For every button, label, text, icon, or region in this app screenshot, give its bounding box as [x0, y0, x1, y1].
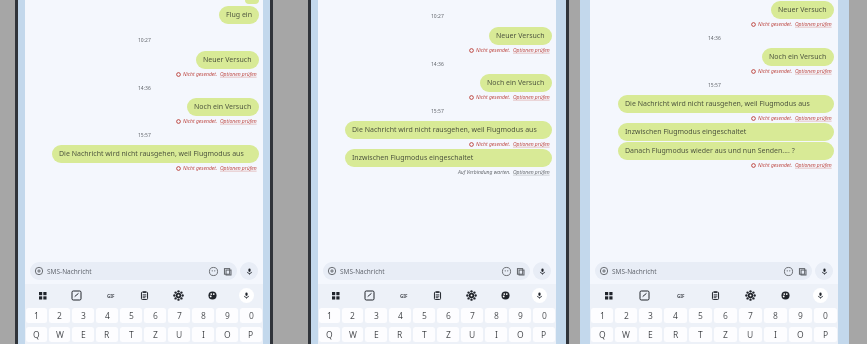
button[interactable]: Optionen prüfen: [795, 115, 832, 122]
button[interactable]: Stickers: [352, 284, 386, 306]
button[interactable]: 4: [389, 308, 411, 323]
button[interactable]: 7: [168, 308, 190, 323]
button[interactable]: Inzwischen Flugmodus eingeschaltet: [618, 123, 834, 141]
button[interactable]: R: [389, 327, 411, 342]
button[interactable]: 2: [615, 308, 637, 323]
button[interactable]: Settings: [733, 284, 768, 306]
button[interactable]: Noch ein Versuch: [762, 48, 834, 66]
button[interactable]: 3: [365, 308, 387, 323]
button[interactable]: GIF: [662, 284, 698, 306]
button[interactable]: Optionen prüfen: [795, 21, 832, 28]
button[interactable]: 6: [437, 308, 459, 323]
button[interactable]: Optionen prüfen: [513, 141, 550, 148]
button[interactable]: Optionen prüfen: [220, 71, 257, 78]
button[interactable]: U: [739, 327, 762, 342]
button[interactable]: 0: [814, 308, 837, 323]
button[interactable]: 3: [639, 308, 662, 323]
button[interactable]: Die Nachricht wird nicht rausgehen, weil…: [618, 95, 834, 113]
button[interactable]: Neuer Versuch: [196, 51, 259, 69]
button[interactable]: Keyboard switcher: [590, 284, 626, 306]
button[interactable]: GIF: [386, 284, 420, 306]
button[interactable]: Themes: [195, 284, 229, 306]
button[interactable]: Keyboard switcher: [25, 284, 59, 306]
button[interactable]: Die Nachricht wird nicht rausgehen, weil…: [345, 121, 552, 139]
button[interactable]: 5: [120, 308, 142, 323]
button[interactable]: 7: [461, 308, 483, 323]
button[interactable]: 1: [591, 308, 613, 323]
button[interactable]: Danach Flugmodus wieder aus und nun Send…: [618, 142, 834, 160]
button[interactable]: 9: [789, 308, 812, 323]
button[interactable]: I: [485, 327, 507, 342]
button[interactable]: Optionen prüfen: [513, 47, 550, 54]
button[interactable]: Z: [144, 327, 166, 342]
button[interactable]: U: [461, 327, 483, 342]
button[interactable]: 8: [192, 308, 214, 323]
button[interactable]: Neuer Versuch: [771, 1, 834, 19]
button[interactable]: Voice typing: [813, 288, 828, 303]
button[interactable]: P: [240, 327, 262, 342]
button[interactable]: Inzwischen Flugmodus eingeschaltet: [345, 149, 552, 167]
button[interactable]: Stickers: [626, 284, 662, 306]
button[interactable]: Settings: [454, 284, 488, 306]
button[interactable]: Voice input: [533, 262, 551, 280]
button[interactable]: 9: [509, 308, 531, 323]
button[interactable]: 2: [342, 308, 363, 323]
button[interactable]: 4: [96, 308, 118, 323]
button[interactable]: O: [509, 327, 531, 342]
button[interactable]: Attach: [323, 262, 530, 280]
button[interactable]: 4: [664, 308, 687, 323]
button[interactable]: T: [413, 327, 435, 342]
button[interactable]: Clipboard: [127, 284, 161, 306]
button[interactable]: O: [216, 327, 238, 342]
button[interactable]: 5: [689, 308, 712, 323]
button[interactable]: T: [120, 327, 142, 342]
button[interactable]: 8: [485, 308, 507, 323]
button[interactable]: Noch ein Versuch: [480, 74, 552, 92]
button[interactable]: R: [664, 327, 687, 342]
button[interactable]: 1: [319, 308, 340, 323]
button[interactable]: E: [639, 327, 662, 342]
button[interactable]: Q: [26, 327, 47, 342]
button[interactable]: Flug ein: [219, 6, 259, 24]
button[interactable]: Q: [591, 327, 613, 342]
button[interactable]: Keyboard switcher: [318, 284, 352, 306]
button[interactable]: Voice input: [815, 262, 833, 280]
button[interactable]: U: [168, 327, 190, 342]
button[interactable]: E: [365, 327, 387, 342]
button[interactable]: GIF: [93, 284, 127, 306]
button[interactable]: P: [533, 327, 555, 342]
button[interactable]: Voice typing: [239, 288, 254, 303]
button[interactable]: Themes: [488, 284, 522, 306]
button[interactable]: 9: [216, 308, 238, 323]
button[interactable]: Clipboard: [698, 284, 733, 306]
button[interactable]: Optionen prüfen: [513, 94, 550, 101]
button[interactable]: 8: [764, 308, 787, 323]
button[interactable]: 2: [49, 308, 70, 323]
button[interactable]: Neuer Versuch: [489, 27, 552, 45]
button[interactable]: 0: [533, 308, 555, 323]
button[interactable]: 6: [714, 308, 737, 323]
button[interactable]: Attach: [595, 262, 812, 280]
button[interactable]: Optionen prüfen: [795, 68, 832, 75]
button[interactable]: P: [814, 327, 837, 342]
button[interactable]: Themes: [768, 284, 803, 306]
button[interactable]: Z: [437, 327, 459, 342]
button[interactable]: Optionen prüfen: [220, 118, 257, 125]
button[interactable]: Settings: [161, 284, 195, 306]
button[interactable]: Optionen prüfen: [513, 169, 550, 176]
button[interactable]: W: [615, 327, 637, 342]
button[interactable]: T: [689, 327, 712, 342]
button[interactable]: 3: [72, 308, 94, 323]
button[interactable]: Voice input: [240, 262, 258, 280]
button[interactable]: I: [192, 327, 214, 342]
button[interactable]: R: [96, 327, 118, 342]
button[interactable]: Q: [319, 327, 340, 342]
button[interactable]: Noch ein Versuch: [187, 98, 259, 116]
button[interactable]: O: [789, 327, 812, 342]
button[interactable]: I: [764, 327, 787, 342]
button[interactable]: Die Nachricht wird nicht rausgehen, weil…: [52, 145, 259, 163]
button[interactable]: 1: [26, 308, 47, 323]
button[interactable]: [245, 0, 259, 4]
button[interactable]: 5: [413, 308, 435, 323]
button[interactable]: 0: [240, 308, 262, 323]
